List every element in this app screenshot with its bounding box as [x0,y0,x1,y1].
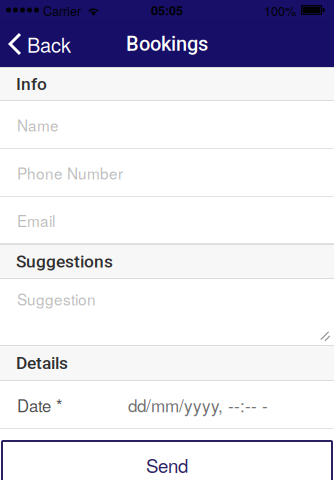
staticText: Send [146,452,188,478]
staticText: Suggestion [17,288,96,310]
staticText: Carrier [43,1,81,19]
staticText: Details [16,353,68,373]
staticText: Back [27,30,71,58]
staticText: Phone Number [17,162,123,184]
staticText: dd/mm/yyyy, --:-- - [128,393,268,417]
button[interactable]: Back [0,22,90,66]
button[interactable]: Send [2,441,332,480]
staticText: Name [17,114,59,136]
staticText: Info [16,74,47,94]
staticText: 05:05 [151,1,183,19]
staticText: Suggestions [16,251,113,272]
staticText: 100% [264,1,296,19]
staticText: Email [17,209,55,231]
staticText: Bookings [126,32,208,56]
staticText: Date * [17,393,62,417]
